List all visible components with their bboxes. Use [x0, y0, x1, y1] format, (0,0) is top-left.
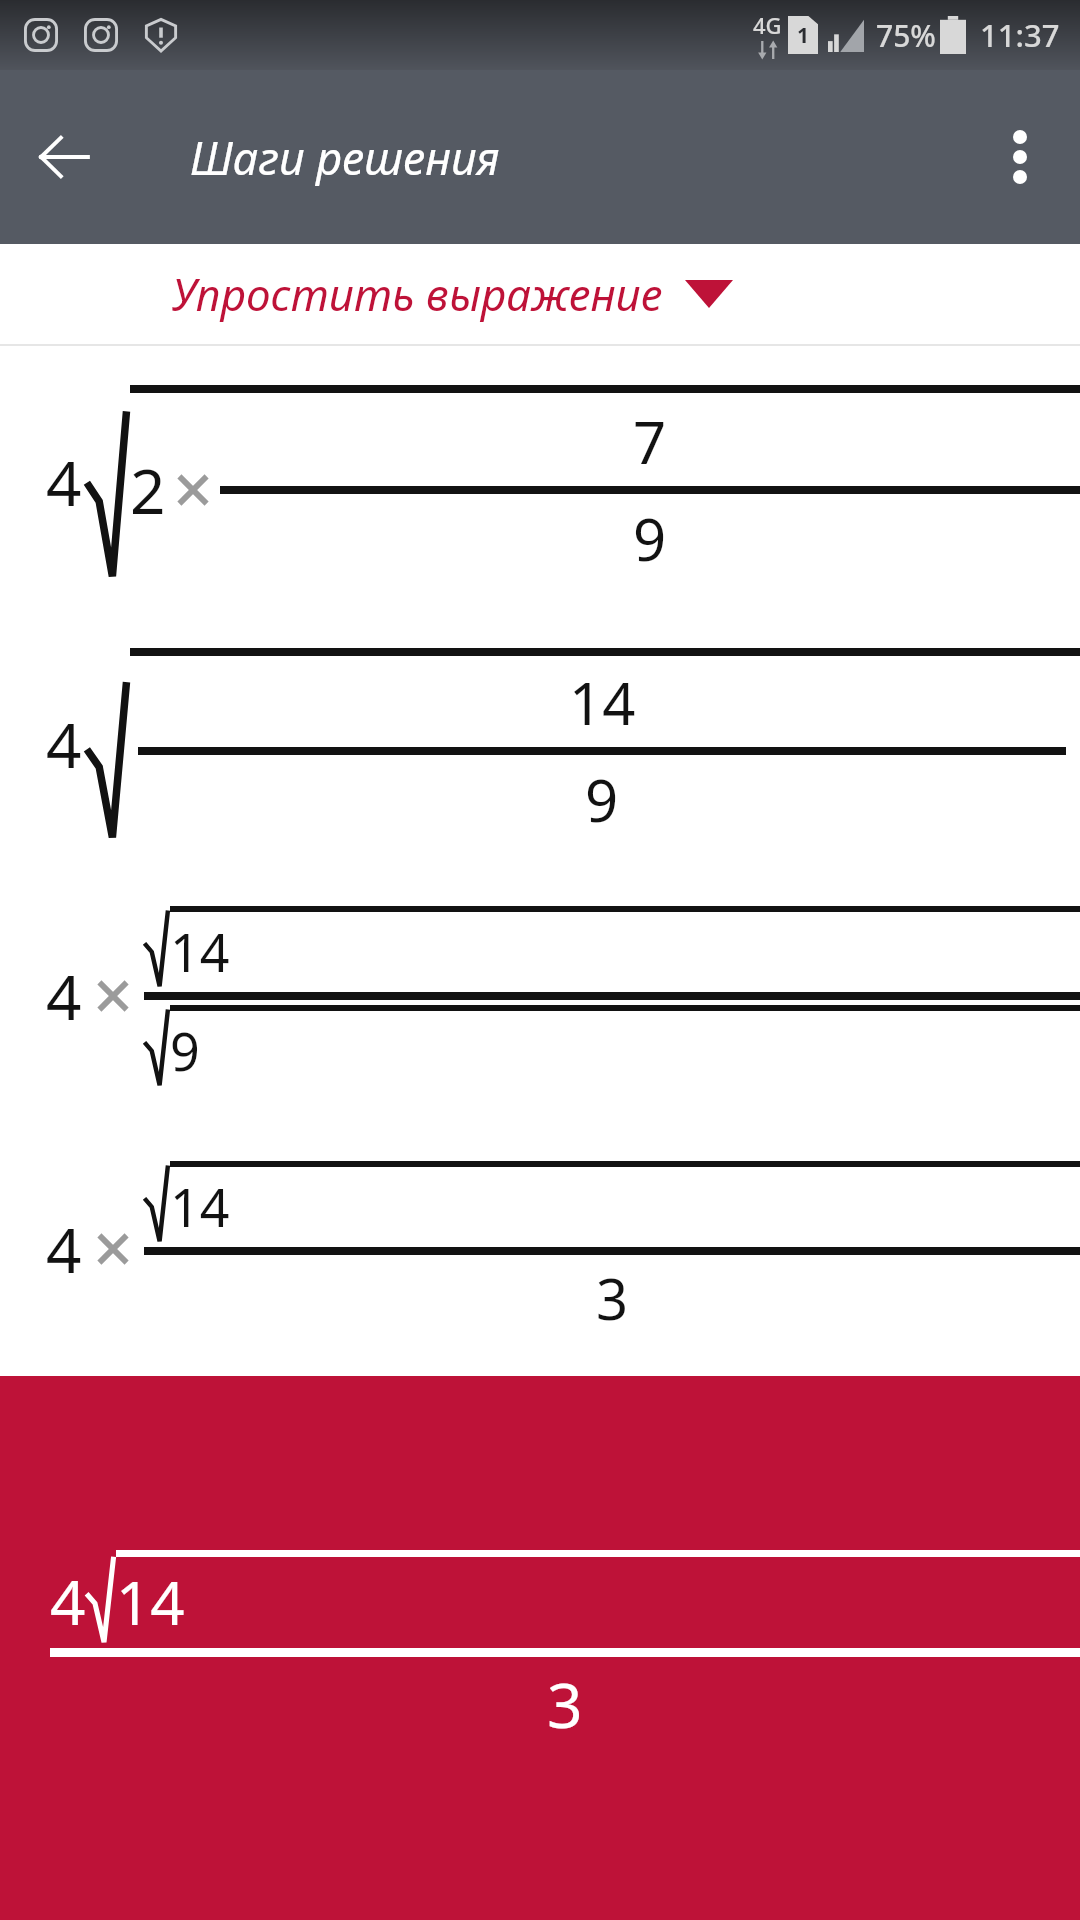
staticText: 4	[46, 440, 82, 524]
staticText: 4	[46, 1207, 82, 1291]
staticText: 11:37	[980, 14, 1060, 56]
button[interactable]: 4	[0, 1121, 1080, 1376]
staticText: 14	[170, 1171, 230, 1242]
staticText: 14	[170, 916, 230, 987]
button[interactable]: 4	[0, 616, 1080, 871]
staticText: 9	[633, 499, 667, 578]
button[interactable]: More options	[978, 115, 1062, 199]
staticText: 2	[130, 448, 166, 532]
staticText: 4G	[753, 10, 782, 40]
staticText: 7	[633, 402, 667, 481]
staticText: 14	[116, 1561, 185, 1643]
staticText: 4	[46, 954, 82, 1038]
staticText: 4	[46, 702, 82, 786]
staticText: 4	[50, 1559, 86, 1643]
staticText: 9	[170, 1015, 200, 1086]
button[interactable]: 4	[0, 871, 1080, 1121]
staticText: 3	[596, 1260, 629, 1336]
button[interactable]: Back	[22, 115, 106, 199]
staticText: 14	[569, 663, 636, 742]
staticText: 9	[585, 760, 619, 839]
button[interactable]: Упростить выражение	[0, 244, 1080, 344]
staticText: 75%	[876, 15, 936, 56]
staticText: 1	[797, 21, 810, 50]
staticText: 3	[547, 1662, 583, 1746]
staticText: Упростить выражение	[172, 264, 663, 324]
staticText: Шаги решения	[190, 127, 500, 188]
button[interactable]: 4	[0, 1376, 1080, 1920]
button[interactable]: 4	[0, 346, 1080, 616]
